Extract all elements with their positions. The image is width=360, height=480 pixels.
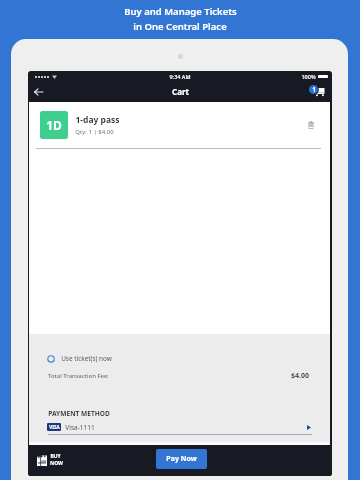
staticText: in One Central Place xyxy=(133,20,227,33)
staticText: PAYMENT METHOD xyxy=(48,409,110,418)
staticText: Use ticket(s) now xyxy=(61,354,112,363)
button[interactable]: VISA xyxy=(47,420,311,434)
staticText: 1-day pass xyxy=(75,114,120,126)
staticText: Buy and Manage Tickets xyxy=(124,5,237,18)
staticText: $4.00 xyxy=(291,371,309,381)
button[interactable]: BUY xyxy=(37,453,63,467)
staticText: 1D xyxy=(46,117,62,133)
button[interactable]: 1D xyxy=(29,105,330,145)
staticText: Cart xyxy=(172,86,189,97)
staticText: 1 xyxy=(312,85,316,94)
staticText: NOW xyxy=(50,460,63,467)
staticText: 9:34 AM xyxy=(169,73,191,80)
staticText: Pay Now xyxy=(166,454,197,464)
button[interactable]: Delete item xyxy=(303,117,319,133)
staticText: VISA xyxy=(49,424,60,430)
button[interactable]: Pay Now xyxy=(156,449,207,469)
button[interactable]: Back xyxy=(30,84,46,100)
staticText: BUY xyxy=(50,453,61,460)
staticText: Qty: 1 | $4.00 xyxy=(75,128,114,136)
button[interactable]: Use ticket(s) now xyxy=(47,354,112,363)
staticText: Total Transaction Fee: xyxy=(48,372,109,380)
staticText: 100% xyxy=(301,73,316,80)
staticText: Visa-1111 xyxy=(65,423,95,432)
button[interactable]: Shopping cart xyxy=(308,84,328,104)
